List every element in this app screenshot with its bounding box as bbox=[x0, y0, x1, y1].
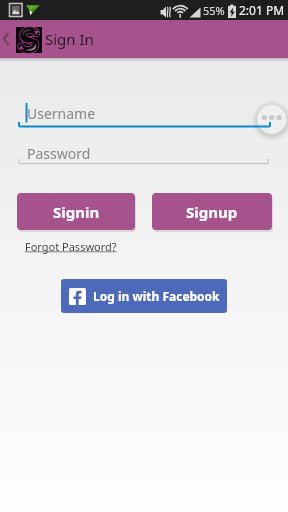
staticText: Username bbox=[27, 104, 96, 123]
staticText: Signin bbox=[53, 202, 100, 222]
button[interactable]: Log in with Facebook bbox=[61, 279, 227, 313]
button[interactable]: Username bbox=[0, 99, 288, 131]
button[interactable]: Password bbox=[0, 136, 288, 168]
button[interactable]: Back bbox=[0, 20, 16, 58]
button[interactable]: Signup bbox=[152, 193, 272, 230]
staticText: Sign In bbox=[45, 29, 94, 49]
staticText: 55% bbox=[203, 3, 225, 18]
staticText: Forgot Password? bbox=[25, 239, 117, 254]
staticText: Signup bbox=[186, 202, 238, 222]
button[interactable]: More options bbox=[256, 104, 288, 136]
staticText: 2:01 PM bbox=[239, 2, 285, 18]
staticText: Password bbox=[27, 144, 91, 163]
button[interactable]: Forgot Password? bbox=[25, 239, 117, 254]
button[interactable]: Signin bbox=[17, 193, 135, 230]
staticText: Log in with Facebook bbox=[93, 288, 220, 304]
